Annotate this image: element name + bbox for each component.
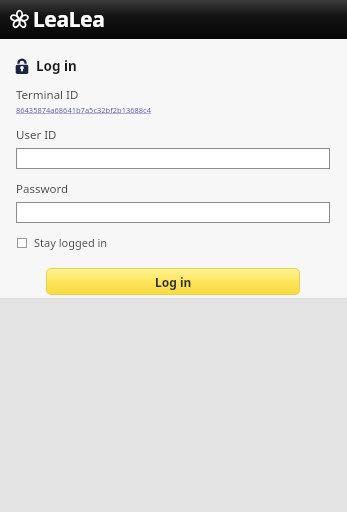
button[interactable]: 86435874a68641b7a5c32bf2b13688c4 — [16, 105, 151, 115]
staticText: User ID — [16, 127, 57, 143]
button[interactable]: Secure — [15, 57, 77, 75]
staticText: Stay logged in — [34, 235, 108, 250]
button[interactable] — [16, 148, 330, 169]
staticText: Password — [16, 181, 69, 197]
staticText: Terminal ID — [16, 87, 79, 103]
button[interactable]: Stay logged in — [17, 235, 108, 250]
staticText: Log in — [36, 57, 77, 75]
staticText: LeaLea — [33, 5, 105, 34]
staticText: Log in — [155, 274, 192, 290]
button[interactable]: LeaLea home — [10, 5, 105, 34]
other: Secure — [15, 58, 29, 74]
button[interactable] — [16, 202, 330, 223]
button[interactable]: Log in — [46, 268, 300, 295]
